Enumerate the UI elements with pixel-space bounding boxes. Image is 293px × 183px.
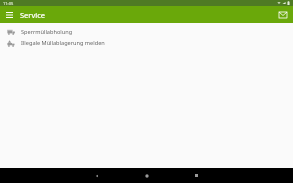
button[interactable]: Contact bbox=[276, 8, 289, 21]
button[interactable]: Home bbox=[140, 169, 153, 182]
button[interactable]: Back bbox=[90, 169, 103, 182]
button[interactable]: Illegale Müllablagerung melden bbox=[0, 37, 293, 48]
button[interactable]: Sperrmüllabholung bbox=[0, 26, 293, 37]
staticText: 11:05 bbox=[3, 1, 14, 6]
button[interactable]: Open navigation drawer bbox=[4, 9, 15, 20]
staticText: Illegale Müllablagerung melden bbox=[21, 39, 105, 47]
button[interactable]: Recent apps bbox=[190, 169, 203, 182]
staticText: Service bbox=[20, 10, 46, 20]
staticText: Sperrmüllabholung bbox=[21, 28, 73, 36]
